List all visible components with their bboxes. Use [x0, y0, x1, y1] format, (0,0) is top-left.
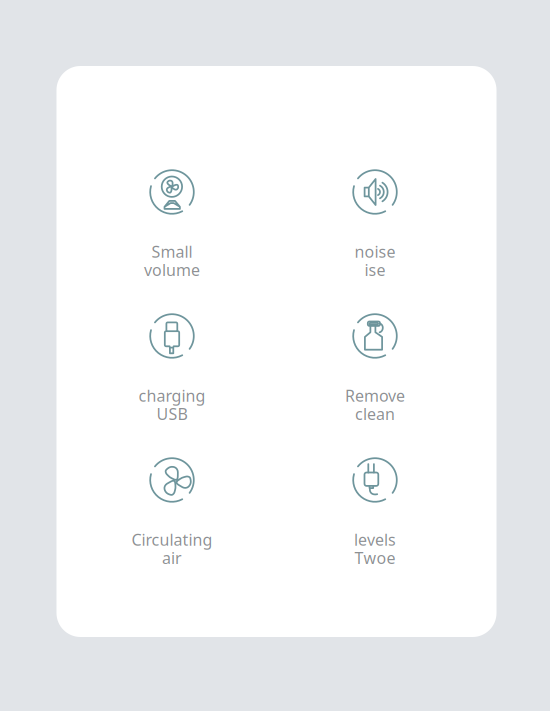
staticText: charging: [138, 385, 205, 406]
button[interactable]: Small: [87, 164, 257, 294]
button[interactable]: noise: [290, 164, 460, 294]
button[interactable]: Remove: [290, 308, 460, 438]
staticText: Small: [151, 241, 192, 262]
staticText: Remove: [345, 385, 405, 406]
staticText: Circulating: [131, 529, 212, 550]
button[interactable]: Circulating: [87, 452, 257, 582]
staticText: Twoe: [354, 547, 395, 568]
staticText: air: [162, 547, 182, 568]
staticText: ise: [364, 259, 385, 280]
staticText: volume: [144, 259, 200, 280]
button[interactable]: levels: [290, 452, 460, 582]
button[interactable]: charging: [87, 308, 257, 438]
staticText: noise: [354, 241, 395, 262]
staticText: USB: [156, 403, 187, 424]
staticText: levels: [354, 529, 396, 550]
staticText: clean: [355, 403, 395, 424]
